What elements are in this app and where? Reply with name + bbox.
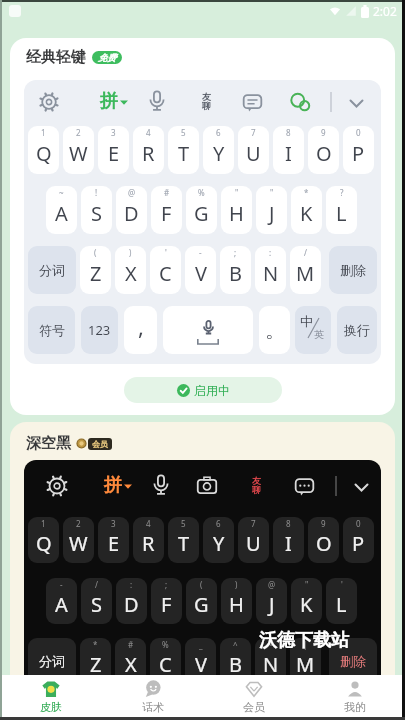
staticText: 3 <box>111 518 116 529</box>
button[interactable]: 1 <box>28 126 59 174</box>
staticText: 分词 <box>39 262 65 278</box>
button[interactable]: @ <box>116 186 147 234</box>
button[interactable]: 2 <box>63 517 94 563</box>
button[interactable]: 。 <box>259 306 290 354</box>
staticText: F <box>161 200 172 227</box>
button[interactable]: 分词 <box>28 638 76 684</box>
button[interactable]: ' <box>150 246 181 294</box>
button[interactable]: 会员 <box>203 675 304 720</box>
button[interactable]: " <box>256 186 287 234</box>
button[interactable]: 7 <box>238 126 269 174</box>
button[interactable]: 6 <box>203 126 234 174</box>
button[interactable]: 8 <box>273 126 304 174</box>
staticText: 0 <box>356 127 361 138</box>
staticText: V <box>195 260 207 287</box>
staticText: L <box>336 591 347 618</box>
button[interactable]: 5 <box>168 517 199 563</box>
staticText: J <box>269 591 275 618</box>
button[interactable]: ( <box>186 578 217 624</box>
staticText: / <box>304 247 307 258</box>
button[interactable]: 3 <box>98 126 129 174</box>
button[interactable]: " <box>221 186 252 234</box>
button[interactable]: , <box>124 306 157 354</box>
button[interactable]: ) <box>221 578 252 624</box>
button[interactable]: / <box>290 246 321 294</box>
staticText: 符号 <box>39 322 65 338</box>
button[interactable]: 深空黑 <box>10 422 395 720</box>
button[interactable]: ( <box>80 246 111 294</box>
button[interactable]: @ <box>256 578 287 624</box>
staticText: 2:02 <box>373 3 397 19</box>
staticText: 2 <box>76 127 81 138</box>
staticText: 4 <box>146 518 151 529</box>
button[interactable]: 符号 <box>28 306 75 354</box>
button[interactable]: 7 <box>238 517 269 563</box>
button[interactable]: ' <box>326 578 357 624</box>
staticText: C <box>159 260 172 287</box>
button[interactable]: | <box>290 638 321 684</box>
staticText: D <box>124 591 139 618</box>
button[interactable]: 0 <box>343 126 374 174</box>
button[interactable]: 经典轻键 <box>10 38 395 415</box>
button[interactable]: 分词 <box>28 246 76 294</box>
staticText: X <box>125 260 137 287</box>
button[interactable]: 4 <box>133 126 164 174</box>
staticText: T <box>178 530 190 557</box>
button[interactable]: - <box>185 246 216 294</box>
button[interactable]: * <box>80 638 111 684</box>
staticText: * <box>93 639 98 650</box>
staticText: 3 <box>111 127 116 138</box>
button[interactable]: 皮肤 <box>0 675 102 720</box>
staticText: ( <box>94 247 97 258</box>
button[interactable]: % <box>186 186 217 234</box>
button[interactable] <box>163 306 253 354</box>
button[interactable]: 我的 <box>304 675 405 720</box>
button[interactable]: : <box>255 246 286 294</box>
button[interactable]: # <box>115 638 146 684</box>
staticText: N <box>263 260 279 287</box>
button[interactable]: # <box>151 186 182 234</box>
staticText: H <box>229 591 244 618</box>
staticText: 7 <box>251 127 256 138</box>
button[interactable]: * <box>291 186 322 234</box>
staticText: ) <box>235 579 238 590</box>
button[interactable]: ? <box>326 186 357 234</box>
button[interactable]: ~ <box>46 186 77 234</box>
button[interactable]: 9 <box>308 517 339 563</box>
button[interactable]: 123 <box>81 306 118 354</box>
button[interactable]: 3 <box>98 517 129 563</box>
staticText: E <box>108 530 120 557</box>
button[interactable]: / <box>81 578 112 624</box>
button[interactable]: 删除 <box>329 638 377 684</box>
button[interactable]: 0 <box>343 517 374 563</box>
button[interactable]: ! <box>81 186 112 234</box>
button[interactable]: ; <box>151 578 182 624</box>
staticText: 话术 <box>142 700 164 714</box>
button[interactable]: _ <box>185 638 216 684</box>
button[interactable]: 4 <box>133 517 164 563</box>
button[interactable]: 2 <box>63 126 94 174</box>
button[interactable]: 启用中 <box>124 377 282 403</box>
button[interactable]: 话术 <box>102 675 203 720</box>
button[interactable]: ~ <box>255 638 286 684</box>
button[interactable]: 中 <box>295 306 331 354</box>
button[interactable]: 9 <box>308 126 339 174</box>
button[interactable]: % <box>150 638 181 684</box>
button[interactable]: ^ <box>220 638 251 684</box>
button[interactable]: 6 <box>203 517 234 563</box>
button[interactable]: : <box>116 578 147 624</box>
button[interactable]: ; <box>220 246 251 294</box>
button[interactable]: 8 <box>273 517 304 563</box>
staticText: F <box>161 591 172 618</box>
button[interactable]: 5 <box>168 126 199 174</box>
button[interactable]: 1 <box>28 517 59 563</box>
staticText: Y <box>213 140 225 167</box>
staticText: " <box>305 579 309 590</box>
button[interactable]: 删除 <box>329 246 377 294</box>
staticText: 删除 <box>340 653 366 669</box>
button[interactable]: 换行 <box>337 306 377 354</box>
staticText: 我的 <box>344 700 366 714</box>
button[interactable]: ) <box>115 246 146 294</box>
button[interactable]: - <box>46 578 77 624</box>
button[interactable]: " <box>291 578 322 624</box>
